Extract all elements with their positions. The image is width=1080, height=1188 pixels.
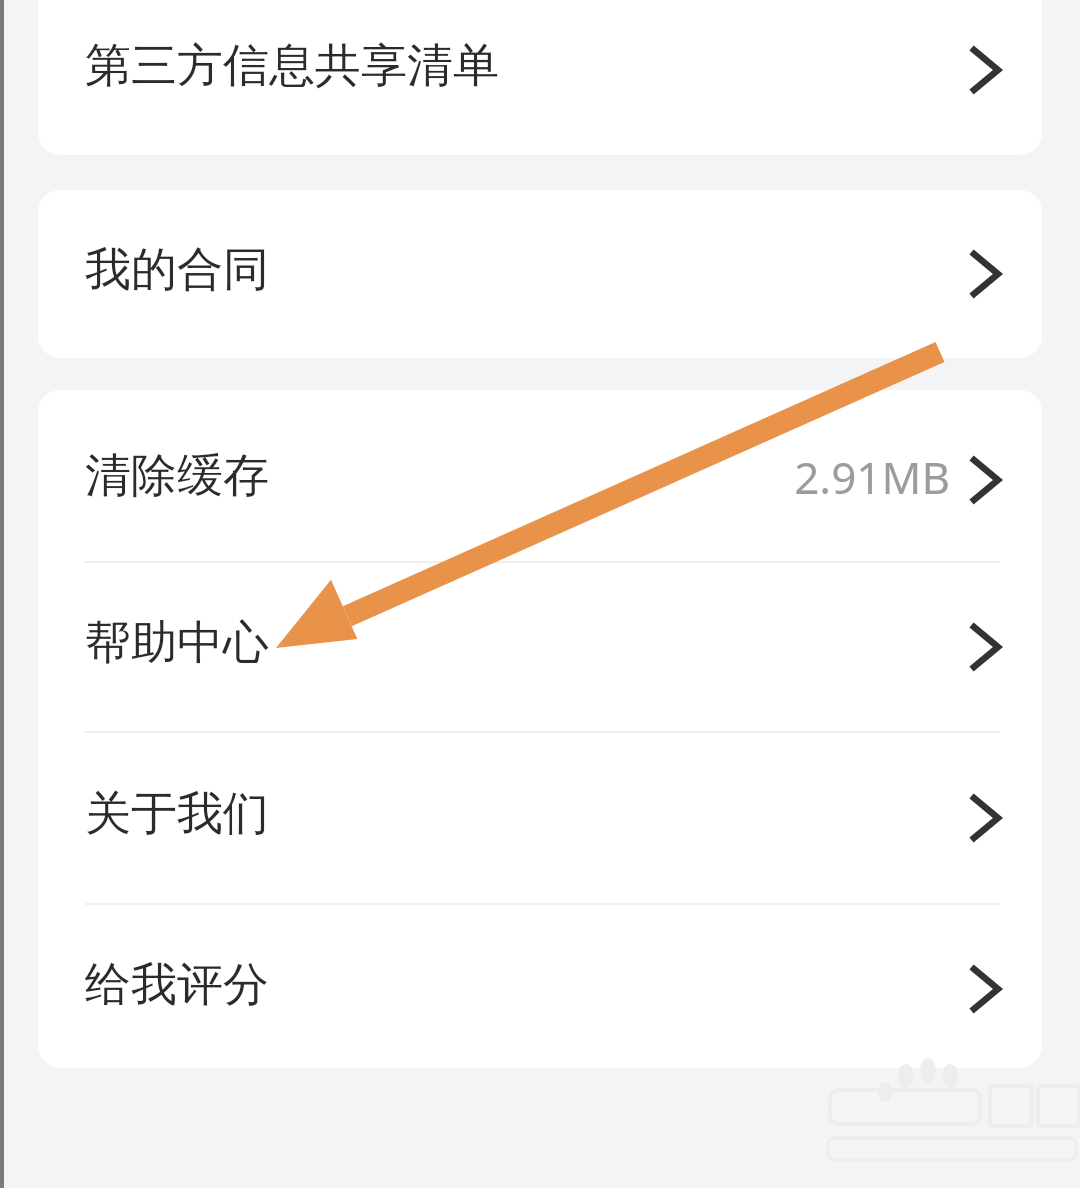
button[interactable]: 关于我们 (38, 733, 1042, 903)
staticText: 给我评分 (85, 956, 269, 1014)
staticText: 清除缓存 (85, 447, 269, 505)
staticText: 关于我们 (85, 785, 269, 843)
staticText: 2.91MB (560, 447, 950, 517)
staticText: 我的合同 (85, 241, 269, 299)
staticText: 帮助中心 (85, 614, 269, 672)
staticText: 第三方信息共享清单 (85, 37, 499, 95)
button[interactable]: 帮助中心 (38, 563, 1042, 731)
button[interactable]: 清除缓存 (38, 390, 1042, 561)
button[interactable]: 我的合同 (38, 190, 1042, 358)
button[interactable]: 第三方信息共享清单 (38, 0, 1042, 155)
button[interactable]: 给我评分 (38, 905, 1042, 1068)
